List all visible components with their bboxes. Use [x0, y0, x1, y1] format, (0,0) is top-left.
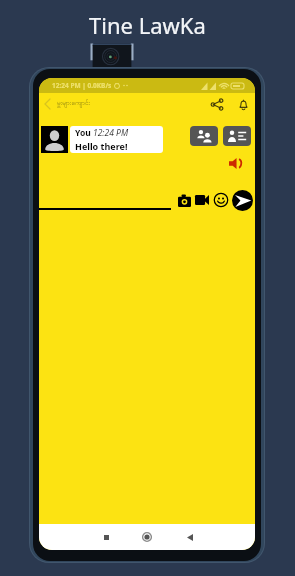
staticText: 12:24 PM | 0.0KB/s: [52, 81, 112, 90]
button[interactable]: Notifications: [234, 95, 252, 113]
button[interactable]: Back: [181, 528, 199, 546]
staticText: 12:24 PM: [93, 127, 129, 139]
button[interactable]: Send: [232, 190, 253, 211]
staticText: မှူးများကျောင်း: [57, 99, 91, 109]
button[interactable]: Share: [208, 95, 226, 113]
button[interactable]: Back: [40, 97, 54, 111]
button[interactable]: Recents: [97, 528, 115, 546]
button[interactable]: Emoji: [214, 193, 228, 207]
button[interactable]: Contact list: [223, 126, 251, 146]
button[interactable]: Video: [195, 194, 209, 206]
button[interactable]: Home: [138, 528, 156, 546]
button[interactable]: Camera: [178, 194, 191, 207]
button[interactable]: Sound: [229, 158, 242, 169]
button[interactable]: Members: [190, 126, 218, 146]
staticText: You: [75, 127, 93, 139]
staticText: Hello there!: [75, 140, 128, 152]
staticText: Tine LawKa: [89, 10, 206, 40]
button[interactable]: You: [70, 126, 163, 153]
